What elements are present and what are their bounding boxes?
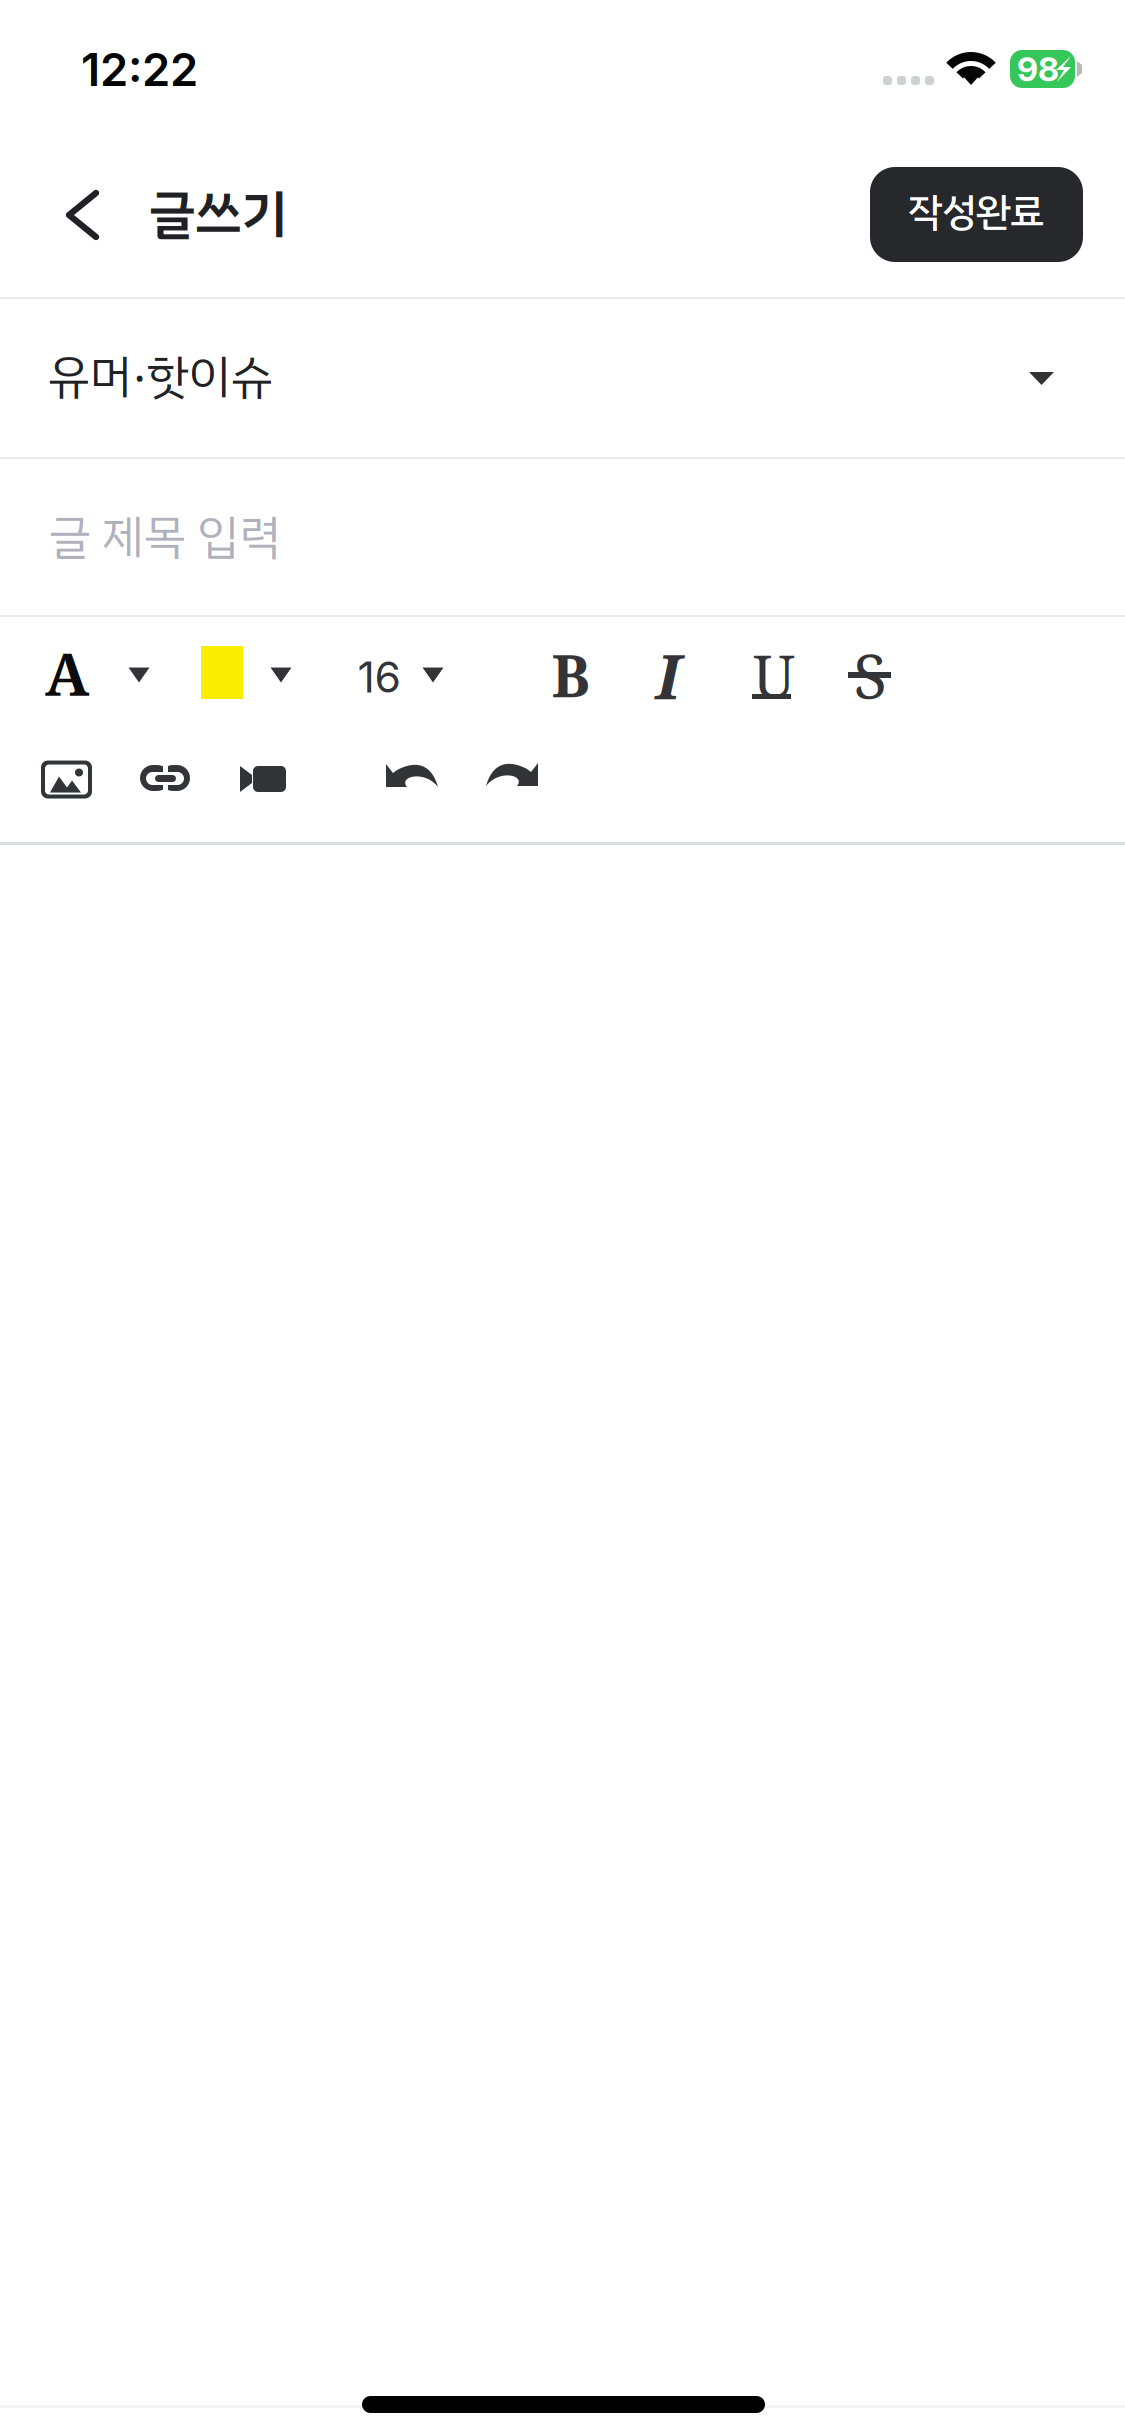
button[interactable]: 유머·핫이슈	[0, 299, 1125, 457]
staticText: A	[45, 633, 89, 713]
button[interactable]: Undo	[386, 764, 438, 788]
staticText: 글 제목 입력	[49, 502, 281, 572]
button[interactable]: Font	[35, 638, 99, 708]
staticText: 98	[1017, 49, 1059, 89]
button[interactable]: Redo	[486, 763, 538, 788]
staticText: U	[753, 635, 795, 715]
button[interactable]: Strikethrough	[847, 643, 893, 707]
staticText: S	[853, 633, 886, 717]
staticText: 작성완료	[908, 183, 1044, 241]
button[interactable]: Insert link	[130, 766, 180, 792]
button[interactable]: Bold	[548, 643, 594, 707]
button[interactable]: Insert photo	[41, 760, 92, 799]
button[interactable]: Back	[62, 175, 158, 271]
button[interactable]: Font size picker	[411, 647, 455, 703]
staticText: B	[551, 636, 590, 714]
staticText: 16	[357, 651, 400, 703]
button[interactable]: Italic	[645, 643, 691, 707]
staticText: 유머·핫이슈	[48, 342, 273, 412]
button[interactable]: Underline	[751, 643, 797, 707]
staticText: 글쓰기	[149, 175, 287, 253]
staticText: I	[655, 632, 680, 718]
button[interactable]: 작성완료	[870, 167, 1083, 262]
button[interactable]: Colour picker	[259, 647, 303, 703]
button[interactable]: 글 제목 입력	[0, 459, 1125, 615]
button[interactable]: Font size	[349, 642, 409, 712]
button[interactable]: Font family	[117, 647, 161, 703]
staticText: 12:22	[81, 42, 198, 97]
button[interactable]: Insert video	[240, 766, 286, 792]
